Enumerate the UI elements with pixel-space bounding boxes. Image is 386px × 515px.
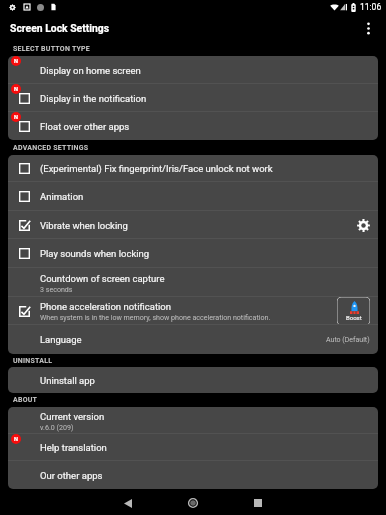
staticText: Countdown of screen capture — [40, 273, 165, 284]
button[interactable]: Vibrate when locking — [8, 211, 378, 239]
staticText: N — [14, 58, 18, 65]
staticText: Phone acceleration notification — [40, 301, 171, 312]
button[interactable]: Current version — [8, 407, 378, 434]
staticText: Boost — [346, 314, 362, 321]
button[interactable]: Our other apps — [8, 461, 378, 489]
button[interactable]: Language — [8, 325, 378, 354]
button[interactable]: Back — [117, 492, 139, 514]
staticText: Play sounds when locking — [40, 248, 150, 259]
staticText: Auto (Default) — [326, 336, 370, 344]
staticText: 11:06 — [360, 2, 382, 12]
staticText: N — [14, 86, 18, 93]
staticText: Float over other apps — [40, 121, 130, 132]
button[interactable]: Display in the notification — [8, 84, 378, 112]
button[interactable]: Recent apps — [247, 492, 269, 514]
button[interactable]: Home — [182, 492, 204, 514]
button[interactable]: Phone acceleration notification — [8, 297, 378, 325]
button[interactable]: Uninstall app — [8, 367, 378, 393]
staticText: N — [14, 436, 18, 443]
staticText: UNINSTALL — [13, 357, 53, 365]
button[interactable]: Float over other apps — [8, 112, 378, 140]
staticText: Vibrate when locking — [40, 220, 128, 231]
staticText: Uninstall app — [40, 375, 95, 386]
button[interactable]: (Experimental) Fix fingerprint/Iris/Face… — [8, 155, 378, 182]
button[interactable]: Animation — [8, 182, 378, 211]
button[interactable]: Display on home screen — [8, 56, 378, 84]
staticText: Display in the notification — [40, 93, 147, 104]
staticText: N — [14, 114, 18, 121]
staticText: Our other apps — [40, 470, 103, 481]
staticText: Help translation — [40, 442, 107, 453]
button[interactable]: Boost — [337, 297, 370, 325]
button[interactable]: Vibration settings — [357, 219, 370, 232]
staticText: Screen Lock Settings — [10, 22, 110, 34]
staticText: Current version — [40, 411, 105, 422]
button[interactable]: Help translation — [8, 434, 378, 461]
staticText: When system is in the low memory, show p… — [40, 313, 271, 321]
staticText: Animation — [40, 191, 84, 202]
button[interactable]: Play sounds when locking — [8, 239, 378, 268]
button[interactable]: More options — [358, 18, 378, 38]
staticText: Language — [40, 334, 82, 345]
staticText: v.6.0 (209) — [40, 423, 74, 431]
staticText: (Experimental) Fix fingerprint/Iris/Face… — [40, 163, 273, 174]
staticText: ABOUT — [13, 396, 38, 404]
staticText: 3 seconds — [40, 285, 73, 293]
staticText: SELECT BUTTON TYPE — [13, 45, 91, 53]
staticText: Display on home screen — [40, 65, 141, 76]
staticText: ADVANCED SETTINGS — [13, 144, 89, 152]
button[interactable]: Countdown of screen capture — [8, 268, 378, 297]
